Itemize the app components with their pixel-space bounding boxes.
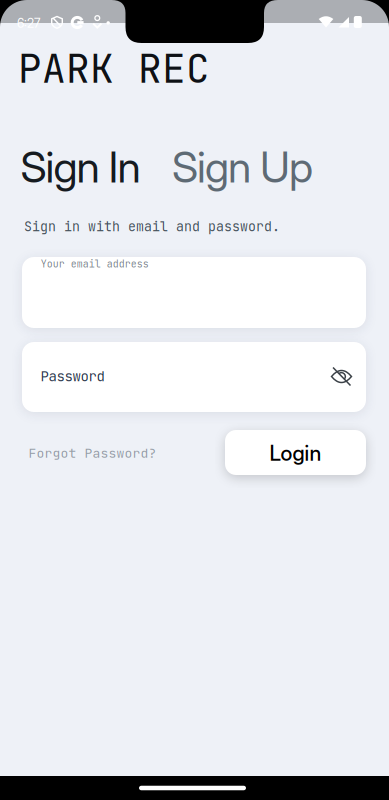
button[interactable]: Forgot Password? <box>28 444 156 462</box>
staticText: Sign Up <box>172 141 313 193</box>
button[interactable]: Your email address <box>22 257 366 328</box>
staticText: PARK REC <box>18 43 210 94</box>
staticText: Forgot Password? <box>28 444 156 462</box>
staticText: Sign In <box>20 141 140 193</box>
button[interactable]: Login <box>225 430 366 475</box>
button[interactable]: Sign Up <box>172 141 313 193</box>
staticText: 6:27 <box>17 16 40 31</box>
staticText: Login <box>269 440 321 466</box>
staticText: Sign in with email and password. <box>24 218 280 235</box>
staticText: Your email address <box>41 257 149 271</box>
staticText: Password <box>40 367 104 385</box>
button[interactable]: Password <box>22 342 366 412</box>
button[interactable]: Sign In <box>20 141 140 193</box>
